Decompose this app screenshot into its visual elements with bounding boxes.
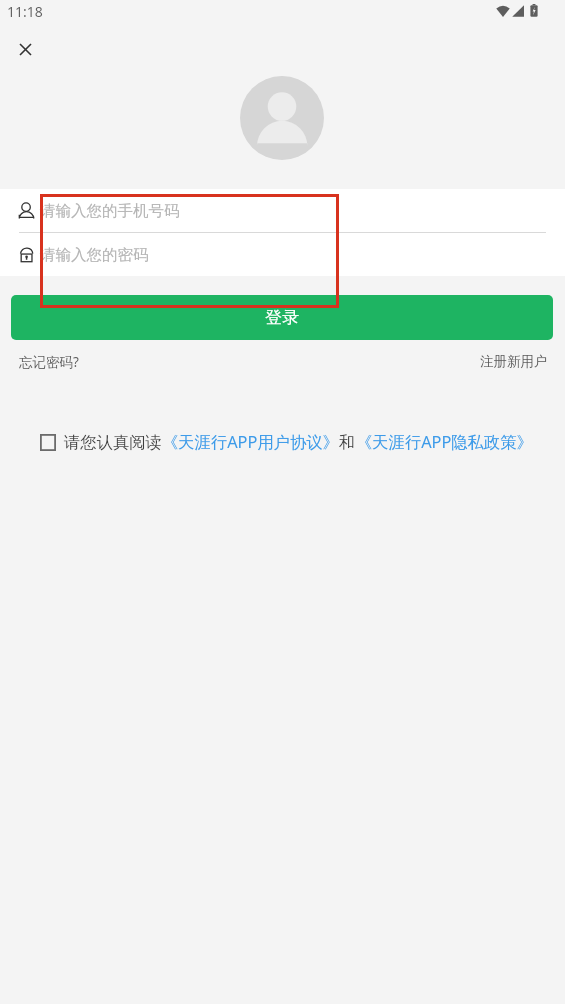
button[interactable]: 请输入您的密码 [0,233,565,276]
button[interactable]: Close [8,32,43,67]
staticText: 请输入您的密码 [40,245,149,265]
button[interactable]: 《天涯行APP用户协议》 [162,431,339,453]
staticText: 忘记密码? [19,353,79,371]
button[interactable]: 忘记密码? [19,353,79,371]
button[interactable]: 《天涯行APP隐私政策》 [356,431,533,453]
staticText: 和 [339,432,356,453]
staticText: 登录 [265,307,299,328]
button[interactable]: Agree to terms [40,434,56,451]
staticText: 11:18 [7,2,43,21]
staticText: 请输入您的手机号码 [40,201,180,221]
staticText: 注册新用户 [480,353,548,370]
button[interactable]: 注册新用户 [480,353,548,370]
button[interactable]: 登录 [11,295,553,340]
staticText: 请您认真阅读 [64,432,162,453]
button[interactable]: 请输入您的手机号码 [0,189,565,232]
